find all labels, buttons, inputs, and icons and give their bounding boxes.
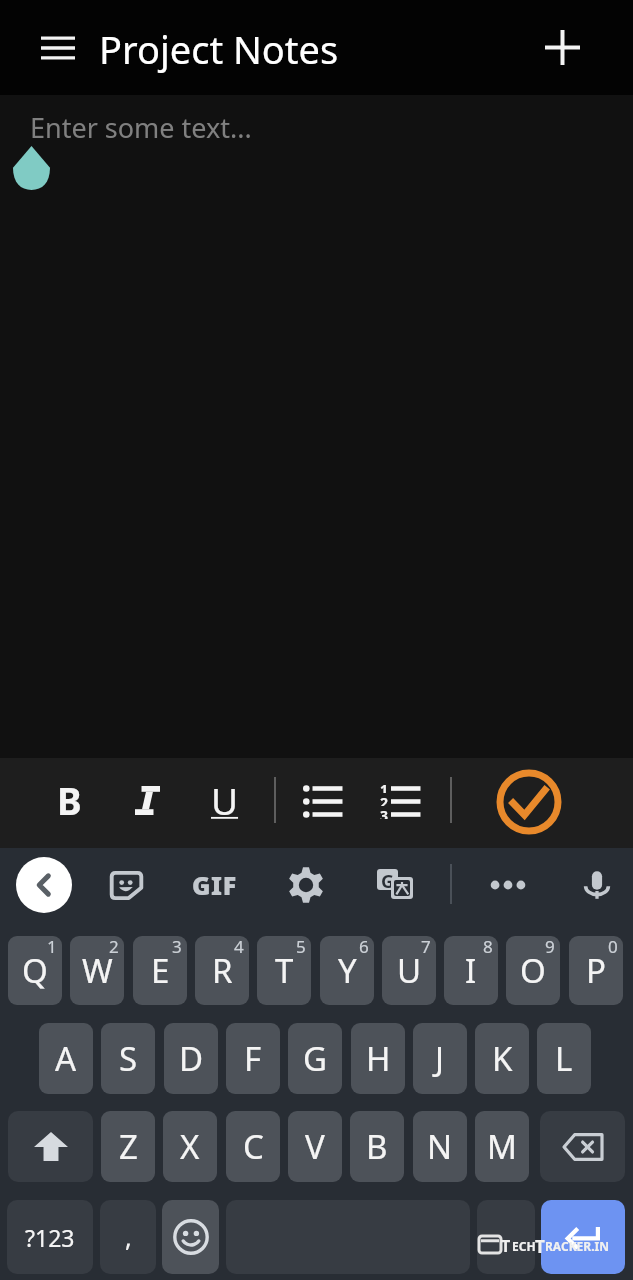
button[interactable]: Comma	[100, 1200, 156, 1274]
button[interactable]: B	[350, 1111, 404, 1182]
staticText: 3	[172, 936, 182, 958]
staticText: 2	[109, 936, 119, 958]
button[interactable]: Enter some text...	[0, 95, 633, 758]
button[interactable]: Done	[494, 767, 564, 837]
staticText: K	[492, 1036, 513, 1081]
staticText: 3	[380, 806, 389, 819]
staticText: 9	[545, 936, 555, 958]
staticText: H	[366, 1036, 391, 1081]
button[interactable]: H	[351, 1023, 405, 1094]
button[interactable]: Shift	[8, 1111, 93, 1182]
staticText: O	[520, 948, 546, 993]
button[interactable]: Enter	[541, 1200, 625, 1274]
button[interactable]: Period	[477, 1200, 535, 1274]
staticText: 8	[483, 936, 493, 958]
button[interactable]: Backspace	[540, 1111, 625, 1182]
staticText: 0	[608, 936, 618, 958]
button[interactable]: W	[70, 936, 124, 1005]
staticText: Project Notes	[99, 23, 339, 75]
button[interactable]: Symbols	[7, 1200, 93, 1274]
staticText: U	[211, 775, 239, 825]
button[interactable]: V	[288, 1111, 342, 1182]
button[interactable]: D	[164, 1023, 218, 1094]
button[interactable]: I	[444, 936, 498, 1005]
button[interactable]: E	[133, 936, 187, 1005]
button[interactable]: M	[475, 1111, 529, 1182]
button[interactable]: O	[506, 936, 560, 1005]
staticText: 4	[234, 936, 244, 958]
staticText: X	[180, 1124, 200, 1169]
button[interactable]: G	[288, 1023, 342, 1094]
staticText: 1	[380, 780, 389, 793]
button[interactable]: Voice input	[569, 857, 625, 913]
button[interactable]: J	[413, 1023, 467, 1094]
staticText: V	[305, 1124, 325, 1169]
staticText: 5	[296, 936, 306, 958]
button[interactable]: A	[39, 1023, 93, 1094]
staticText: W	[82, 948, 113, 993]
button[interactable]: Italic	[119, 768, 175, 832]
button[interactable]: N	[413, 1111, 467, 1182]
staticText: ?123	[25, 1222, 75, 1253]
button[interactable]: F	[226, 1023, 280, 1094]
staticText: D	[179, 1036, 204, 1081]
button[interactable]: Back	[16, 857, 72, 913]
staticText: N	[427, 1124, 453, 1169]
staticText: T	[275, 948, 294, 993]
button[interactable]: X	[163, 1111, 217, 1182]
staticText: E	[151, 948, 170, 993]
staticText: Y	[338, 948, 357, 993]
button[interactable]: U	[382, 936, 436, 1005]
staticText: B	[366, 1124, 388, 1169]
staticText: T	[535, 1235, 545, 1258]
staticText: Q	[22, 948, 48, 993]
staticText: J	[435, 1036, 445, 1081]
button[interactable]: C	[226, 1111, 280, 1182]
button[interactable]: Translate	[367, 857, 423, 913]
staticText: 7	[421, 936, 431, 958]
staticText: R	[212, 948, 233, 993]
staticText: C	[243, 1124, 264, 1169]
button[interactable]: Menu	[30, 20, 86, 76]
button[interactable]: Stickers	[98, 857, 154, 913]
button[interactable]: K	[475, 1023, 529, 1094]
staticText: G	[381, 869, 395, 890]
button[interactable]: More options	[480, 857, 536, 913]
staticText: U	[397, 948, 422, 993]
button[interactable]: S	[101, 1023, 155, 1094]
staticText: L	[555, 1036, 573, 1081]
button[interactable]: Settings	[278, 857, 334, 913]
button[interactable]: Emoji	[162, 1200, 219, 1274]
staticText: Enter some text...	[30, 109, 252, 146]
staticText: I	[465, 948, 477, 993]
button[interactable]: Z	[101, 1111, 155, 1182]
button[interactable]: Add note	[534, 19, 590, 75]
staticText: 2	[380, 793, 389, 806]
staticText: ,	[125, 1220, 132, 1254]
button[interactable]: Y	[320, 936, 374, 1005]
button[interactable]: T	[257, 936, 311, 1005]
button[interactable]: Numbered list	[372, 772, 430, 834]
staticText: 1	[47, 936, 57, 958]
button[interactable]: Bulleted list	[295, 772, 353, 834]
staticText: A	[55, 1036, 77, 1081]
staticText: B	[57, 775, 82, 825]
button[interactable]: GIF	[186, 857, 242, 913]
staticText: GIF	[192, 868, 237, 902]
staticText: ECH	[512, 1238, 536, 1254]
staticText: S	[119, 1036, 138, 1081]
staticText: P	[586, 948, 606, 993]
staticText: G	[303, 1036, 328, 1081]
staticText: T	[501, 1235, 511, 1257]
button[interactable]: L	[537, 1023, 591, 1094]
staticText: RACKER.IN	[545, 1238, 609, 1254]
button[interactable]: P	[569, 936, 623, 1005]
staticText: F	[244, 1036, 262, 1081]
button[interactable]: R	[195, 936, 249, 1005]
button[interactable]: Bold	[41, 768, 97, 832]
staticText: Z	[119, 1124, 138, 1169]
button[interactable]: Underline	[197, 768, 253, 832]
staticText: 6	[359, 936, 369, 958]
button[interactable]: Q	[8, 936, 62, 1005]
